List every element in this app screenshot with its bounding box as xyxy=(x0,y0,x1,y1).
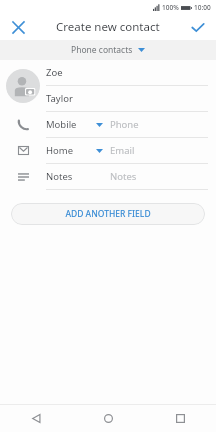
staticText: Phone contacts xyxy=(71,44,133,56)
staticText: Phone xyxy=(110,118,139,131)
staticText: Notes xyxy=(110,170,137,183)
staticText: Home xyxy=(46,144,74,157)
button[interactable]: Zoe xyxy=(46,60,208,86)
staticText: ADD ANOTHER FIELD xyxy=(65,208,151,220)
button[interactable]: Back xyxy=(0,405,72,432)
button[interactable]: Taylor xyxy=(46,86,208,112)
button[interactable]: ADD ANOTHER FIELD xyxy=(11,203,205,225)
button[interactable]: Add photo xyxy=(6,69,40,103)
staticText: Notes xyxy=(46,170,73,183)
staticText: Create new contact xyxy=(56,19,160,35)
button[interactable]: Home xyxy=(0,138,216,164)
button[interactable]: Home xyxy=(72,405,144,432)
button[interactable]: Cancel xyxy=(6,15,30,39)
button[interactable]: Notes xyxy=(0,164,216,190)
staticText: 10:00 xyxy=(194,3,211,12)
staticText: 100% xyxy=(162,3,179,12)
staticText: Taylor xyxy=(46,92,73,105)
button[interactable]: Phone contacts xyxy=(0,40,216,60)
staticText: Mobile xyxy=(46,118,77,131)
button[interactable]: Save xyxy=(186,15,210,39)
staticText: Email xyxy=(110,144,135,157)
button[interactable]: Recent apps xyxy=(144,405,216,432)
staticText: Zoe xyxy=(46,66,63,79)
button[interactable]: Mobile xyxy=(0,112,216,138)
